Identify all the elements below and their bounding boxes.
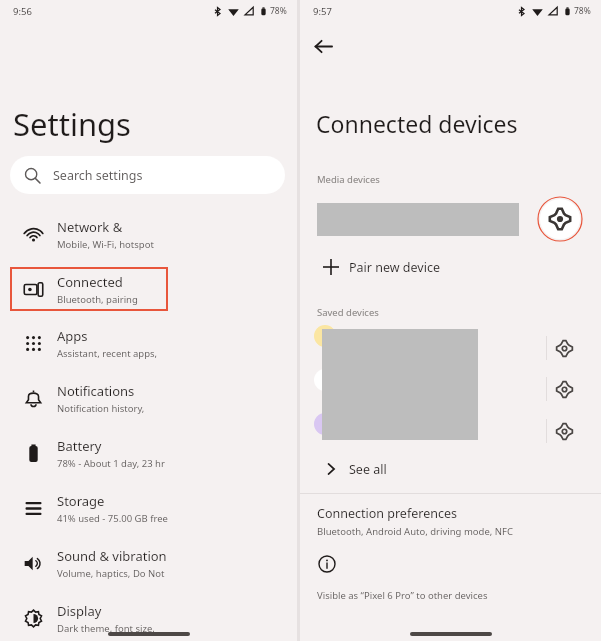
staticText: Notifications <box>57 382 135 400</box>
staticText: Settings <box>13 103 131 145</box>
staticText: Battery <box>57 437 102 455</box>
staticText: Storage <box>57 492 105 510</box>
button[interactable]: Apps <box>10 321 168 365</box>
staticText: 41% used - 75.00 GB free <box>57 512 168 525</box>
staticText: Network & internet <box>57 218 168 236</box>
button[interactable]: Search settings <box>10 156 285 194</box>
staticText: Assistant, recent apps, default apps <box>57 347 168 360</box>
staticText: Saved devices <box>317 306 379 319</box>
staticText: Display <box>57 602 102 620</box>
staticText: Connected devices <box>316 108 518 139</box>
staticText: Volume, haptics, Do Not Disturb <box>57 567 168 580</box>
staticText: Connection preferences <box>317 505 457 522</box>
staticText: 9:57 <box>313 5 332 18</box>
button[interactable]: Connected devices <box>10 267 168 311</box>
staticText: Notification history, conversations <box>57 402 168 415</box>
button[interactable]: Media device settings <box>537 196 583 242</box>
button[interactable]: See all <box>312 455 542 483</box>
button[interactable]: Notifications <box>10 376 168 420</box>
button[interactable]: Connection preferences <box>317 503 587 540</box>
staticText: Sound & vibration <box>57 547 167 565</box>
staticText: Pair new device <box>349 259 440 276</box>
button[interactable]: Storage <box>10 486 168 530</box>
staticText: See all <box>349 461 387 478</box>
button[interactable]: Network & internet <box>10 212 168 256</box>
staticText: Search settings <box>53 167 143 184</box>
button[interactable]: Battery <box>10 431 168 475</box>
staticText: 78% - About 1 day, 23 hr left <box>57 457 168 470</box>
button[interactable]: Back <box>310 33 336 59</box>
button[interactable]: Device settings <box>547 414 581 448</box>
button[interactable]: Device settings <box>547 331 581 365</box>
staticText: Dark theme, font size, brightness <box>57 622 168 635</box>
button[interactable]: Pair new device <box>312 252 542 282</box>
staticText: Bluetooth, Android Auto, driving mode, N… <box>317 525 513 538</box>
staticText: Visible as “Pixel 6 Pro” to other device… <box>317 589 488 602</box>
staticText: 9:56 <box>13 5 32 18</box>
staticText: Media devices <box>317 173 380 186</box>
button[interactable]: Sound & vibration <box>10 541 168 585</box>
staticText: 78% <box>574 5 591 17</box>
button[interactable]: Device settings <box>547 372 581 406</box>
button[interactable]: Display <box>10 596 168 640</box>
staticText: 78% <box>270 5 287 17</box>
staticText: Bluetooth, pairing <box>57 293 138 306</box>
staticText: Mobile, Wi-Fi, hotspot <box>57 238 154 251</box>
staticText: Apps <box>57 327 88 345</box>
staticText: Connected devices <box>57 273 168 291</box>
